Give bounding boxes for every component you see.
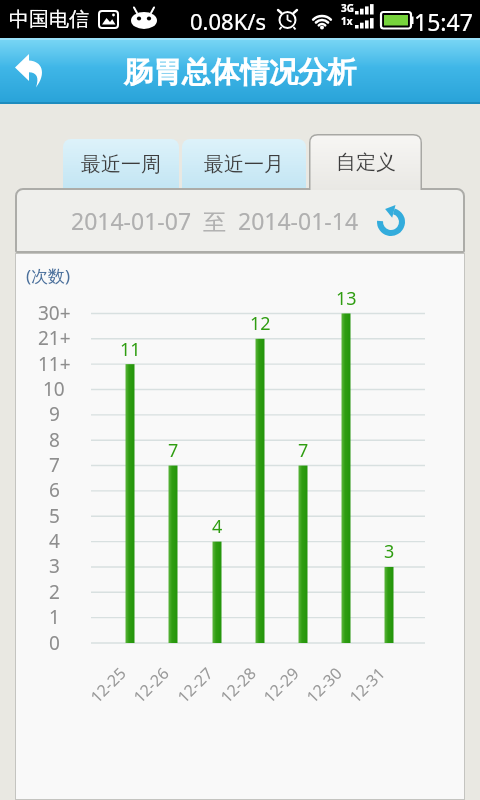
staticText: 1x xyxy=(341,14,353,28)
staticText: 10 xyxy=(43,376,65,402)
staticText: 6 xyxy=(49,477,60,503)
staticText: 12-28 xyxy=(215,662,261,708)
button[interactable] xyxy=(8,48,56,100)
button[interactable]: 自定义 xyxy=(309,134,422,190)
staticText: 15:47 xyxy=(414,6,473,37)
staticText: 2 xyxy=(49,579,60,605)
staticText: 3 xyxy=(49,553,60,579)
staticText: 中国电信 xyxy=(9,7,89,32)
staticText: 4 xyxy=(49,528,60,554)
staticText: 7 xyxy=(298,438,309,462)
staticText: 12-29 xyxy=(258,662,304,708)
staticText: 21+ xyxy=(38,325,71,351)
staticText: 12-30 xyxy=(301,662,347,708)
staticText: 3 xyxy=(384,539,395,563)
staticText: 12-31 xyxy=(344,662,390,708)
staticText: 7 xyxy=(49,452,60,478)
button[interactable]: 2014-01-07 至 2014-01-14 xyxy=(15,188,465,253)
staticText: 自定义 xyxy=(336,150,396,175)
staticText: 9 xyxy=(49,401,60,427)
staticText: 11 xyxy=(120,337,141,361)
staticText: 4 xyxy=(212,514,223,538)
staticText: 2014-01-07 至 2014-01-14 xyxy=(71,205,359,236)
button[interactable]: 最近一月 xyxy=(182,139,306,190)
staticText: 8 xyxy=(49,427,60,453)
button[interactable]: 最近一周 xyxy=(63,139,179,190)
staticText: 5 xyxy=(49,503,60,529)
staticText: 最近一月 xyxy=(204,152,284,177)
staticText: 12-27 xyxy=(172,662,218,708)
staticText: 3G xyxy=(341,1,354,15)
staticText: 12-26 xyxy=(128,662,174,708)
staticText: 最近一周 xyxy=(81,152,161,177)
staticText: 0.08K/s xyxy=(190,6,266,36)
staticText: 30+ xyxy=(38,300,71,326)
staticText: 1 xyxy=(49,604,60,630)
staticText: 7 xyxy=(168,438,179,462)
staticText: 12-25 xyxy=(85,662,131,708)
button[interactable] xyxy=(376,207,406,237)
staticText: 13 xyxy=(336,286,357,310)
staticText: 0 xyxy=(49,630,60,656)
staticText: 肠胃总体情况分析 xyxy=(124,54,356,91)
staticText: 11+ xyxy=(38,351,71,377)
staticText: 12 xyxy=(250,311,271,335)
staticText: (次数) xyxy=(26,264,71,287)
